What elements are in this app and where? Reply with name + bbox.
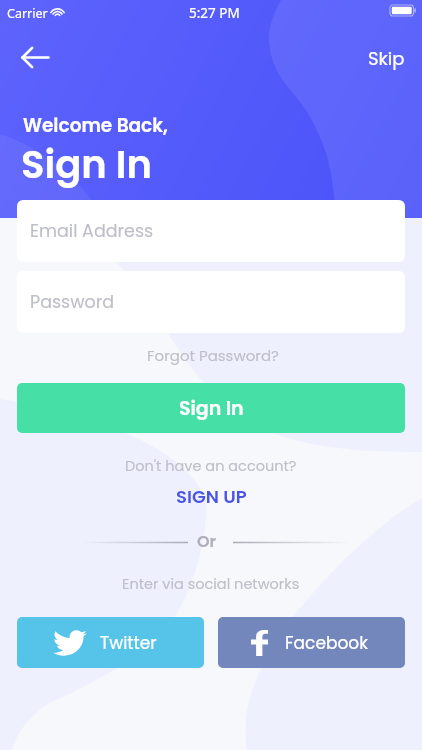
staticText: Carrier — [7, 5, 48, 22]
staticText: Forgot Password? — [147, 345, 279, 366]
staticText: Twitter — [100, 631, 157, 655]
staticText: Password — [30, 290, 115, 315]
staticText: Or — [197, 530, 217, 552]
staticText: Skip — [368, 46, 405, 71]
button[interactable]: Skip — [358, 41, 415, 76]
button[interactable]: Sign In — [17, 383, 405, 433]
button[interactable]: SIGN UP — [168, 481, 255, 512]
button[interactable]: Facebook — [218, 617, 405, 668]
button[interactable]: Forgot Password? — [141, 341, 285, 370]
staticText: 5:27 PM — [189, 4, 240, 22]
button[interactable]: Email Address — [17, 200, 405, 262]
other: Facebook — [251, 630, 268, 656]
staticText: Enter via social networks — [122, 574, 300, 594]
other: Twitter — [53, 630, 87, 656]
staticText: Sign In — [21, 138, 153, 192]
staticText: Don't have an account? — [125, 456, 297, 476]
staticText: Welcome Back, — [23, 113, 168, 139]
button[interactable]: Twitter — [17, 617, 204, 668]
staticText: Facebook — [285, 631, 368, 655]
button[interactable]: Back — [6, 37, 46, 77]
staticText: SIGN UP — [176, 484, 247, 509]
staticText: Sign In — [179, 395, 244, 422]
staticText: Email Address — [30, 219, 154, 244]
button[interactable]: Password — [17, 271, 405, 333]
